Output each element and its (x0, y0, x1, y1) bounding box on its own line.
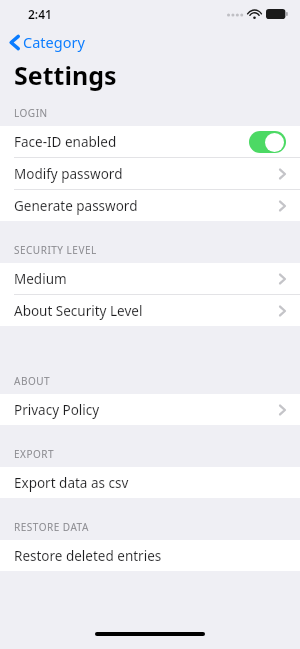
staticText: About Security Level (14, 302, 279, 320)
staticText: Generate password (14, 197, 279, 215)
staticText: Privacy Policy (14, 401, 279, 419)
staticText: Restore deleted entries (14, 547, 286, 565)
staticText: ABOUT (14, 374, 51, 388)
staticText: 2:41 (28, 6, 52, 22)
button[interactable]: Restore deleted entries (0, 540, 300, 571)
button[interactable]: Generate password (0, 190, 300, 221)
button[interactable]: Medium (0, 263, 300, 295)
staticText: LOGIN (14, 106, 48, 120)
staticText: Face-ID enabled (14, 133, 249, 151)
button[interactable]: Face-ID enabled (0, 126, 300, 158)
button[interactable]: Modify password (0, 158, 300, 190)
staticText: Settings (14, 58, 117, 92)
staticText: EXPORT (14, 447, 55, 461)
staticText: Medium (14, 270, 279, 288)
staticText: Modify password (14, 165, 279, 183)
staticText: SECURITY LEVEL (14, 243, 97, 257)
button[interactable]: Export data as csv (0, 467, 300, 498)
button[interactable]: About Security Level (0, 295, 300, 326)
staticText: Export data as csv (14, 474, 286, 492)
other: Face-ID toggle (249, 131, 286, 153)
button[interactable]: Privacy Policy (0, 394, 300, 425)
staticText: Category (23, 32, 85, 52)
staticText: RESTORE DATA (14, 520, 89, 534)
button[interactable]: Category (0, 28, 97, 56)
